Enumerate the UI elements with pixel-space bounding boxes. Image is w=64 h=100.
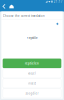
staticText: 21:17 <box>54 0 63 3</box>
staticText: insect <box>28 82 36 85</box>
button[interactable]: vogel <box>3 69 61 78</box>
button[interactable]: reptielen <box>3 59 61 68</box>
button[interactable]: Back <box>1 3 6 10</box>
staticText: zoogdier <box>25 92 38 95</box>
staticText: reptile <box>26 35 37 40</box>
button[interactable]: zoogdier <box>3 89 61 98</box>
button[interactable]: Play pronunciation <box>55 21 60 26</box>
staticText: reptielen <box>25 62 39 65</box>
staticText: Choose the correct translation <box>3 14 45 18</box>
staticText: vogel <box>28 72 36 75</box>
button[interactable]: insect <box>3 79 61 88</box>
